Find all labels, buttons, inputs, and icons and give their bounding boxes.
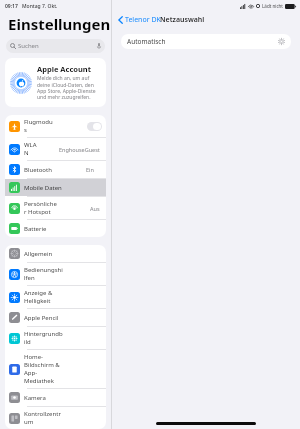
staticText: Bedienungshilfen <box>24 266 63 282</box>
staticText: Netzauswahl <box>160 15 205 25</box>
staticText: Hintergrundbild <box>24 330 63 346</box>
staticText: Home-Bildschirm & App- Mediathek <box>24 353 63 385</box>
button[interactable]: WLAN <box>5 138 106 160</box>
button[interactable]: Apple Pencil <box>5 309 106 326</box>
other: Lädt <box>278 38 285 45</box>
staticText: Kontrollzentrum <box>24 410 63 426</box>
staticText: Anzeige & Helligkeit <box>24 289 63 305</box>
staticText: Persönlicher Hotspot <box>24 200 57 216</box>
staticText: Bluetooth <box>24 166 52 174</box>
staticText: Telenor DK <box>125 15 161 25</box>
staticText: Aus <box>90 205 100 212</box>
staticText: Automatisch <box>127 37 166 46</box>
staticText: Mobile Daten <box>24 184 62 192</box>
button[interactable]: Bedienungshilfen <box>5 263 106 285</box>
button[interactable]: Automatisch <box>121 34 291 49</box>
staticText: Apple Account <box>37 64 91 74</box>
button[interactable]: Anzeige & Helligkeit <box>5 286 106 308</box>
staticText: Kamera <box>24 394 46 402</box>
staticText: Apple Pencil <box>24 314 59 322</box>
button[interactable]: Persönlicher Hotspot <box>5 197 106 219</box>
staticText: Melde dich an, um auf deine iCloud-Daten… <box>37 75 101 101</box>
staticText: Ein <box>86 166 94 173</box>
staticText: Flugmodus <box>24 118 55 134</box>
staticText: Suchen <box>18 42 39 50</box>
button[interactable]: Flugmodus toggle <box>87 122 102 131</box>
staticText: 09:17 <box>5 3 18 10</box>
staticText: Montag 7. Okt. <box>22 3 58 10</box>
staticText: Batterie <box>24 225 47 233</box>
button[interactable]: Kamera <box>5 389 106 406</box>
button[interactable]: Bluetooth <box>5 161 106 178</box>
staticText: EnghouseGuest <box>59 146 100 153</box>
staticText: Einstellungen <box>8 14 111 34</box>
staticText: WLAN <box>24 141 41 157</box>
button[interactable]: Telenor DK <box>116 14 163 26</box>
button[interactable]: Hintergrundbild <box>5 327 106 349</box>
button[interactable]: Apple Account <box>5 58 106 107</box>
staticText: Allgemein <box>24 250 53 258</box>
button[interactable]: Kontrollzentrum <box>5 407 106 429</box>
staticText: Lädt nicht <box>262 3 283 9</box>
button[interactable]: Suchen <box>6 39 105 53</box>
button[interactable]: Flugmodus <box>5 115 106 137</box>
button[interactable]: Allgemein <box>5 245 106 262</box>
button[interactable]: Home-Bildschirm & App- Mediathek <box>5 350 106 388</box>
button[interactable]: Mobile Daten <box>5 179 106 196</box>
button[interactable]: Batterie <box>5 220 106 237</box>
